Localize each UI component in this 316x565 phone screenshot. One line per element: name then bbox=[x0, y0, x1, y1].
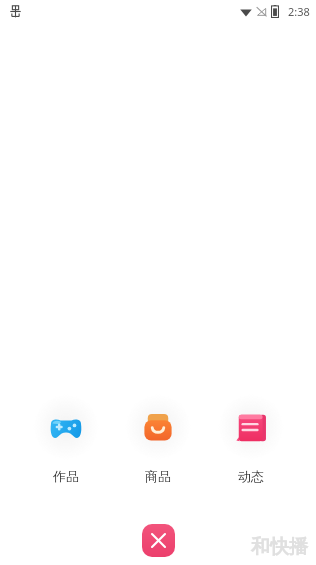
button[interactable]: 动态 bbox=[214, 392, 288, 486]
staticText: 和快播 bbox=[251, 535, 308, 559]
button[interactable]: 作品 bbox=[29, 392, 103, 486]
button[interactable]: 商品 bbox=[121, 392, 195, 486]
button[interactable]: Close bbox=[142, 524, 175, 557]
staticText: 作品 bbox=[53, 468, 79, 484]
staticText: 动态 bbox=[238, 468, 264, 484]
staticText: 商品 bbox=[145, 468, 171, 484]
staticText: 2:38 bbox=[288, 4, 310, 19]
